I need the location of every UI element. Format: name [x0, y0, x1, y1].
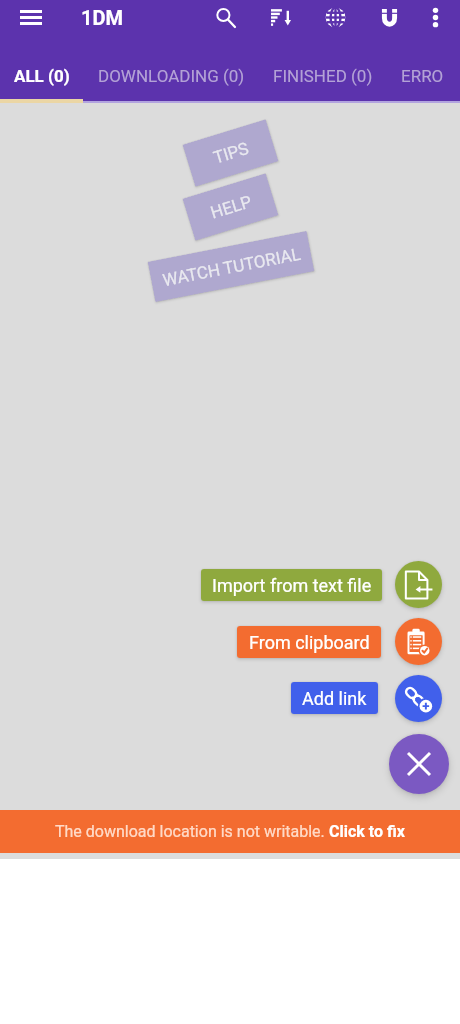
button[interactable]: Search	[204, 0, 246, 38]
button[interactable]: 1DM	[81, 6, 123, 29]
button[interactable]: WATCH TUTORIAL	[148, 231, 314, 302]
staticText: ALL (0)	[14, 66, 70, 86]
button[interactable]: HELP	[182, 173, 279, 241]
button[interactable]: Sort	[260, 0, 302, 38]
staticText: HELP	[208, 191, 254, 223]
button[interactable]: Import from text file	[395, 561, 442, 608]
button[interactable]: Import from text file	[201, 569, 382, 601]
button[interactable]: The download location is not writable.	[0, 810, 460, 853]
staticText: WATCH TUTORIAL	[160, 244, 303, 290]
staticText: 1DM	[81, 6, 123, 29]
button[interactable]: Navigation menu	[9, 0, 53, 35]
button[interactable]: ERROR (0)	[387, 53, 460, 99]
button[interactable]: Close menu	[389, 734, 449, 794]
button[interactable]: Magnet link	[368, 0, 410, 38]
button[interactable]: Browser	[314, 0, 356, 38]
staticText: Click to fix	[329, 822, 405, 841]
staticText: ERROR (0)	[401, 66, 446, 86]
button[interactable]: From clipboard	[395, 618, 442, 665]
button[interactable]: ALL (0)	[0, 53, 84, 99]
button[interactable]: Add link	[395, 675, 442, 722]
staticText: From clipboard	[249, 632, 370, 653]
staticText: Import from text file	[212, 575, 372, 596]
staticText: DOWNLOADING (0)	[98, 66, 245, 86]
staticText: The download location is not writable.	[55, 822, 329, 841]
button[interactable]: TIPS	[182, 119, 279, 187]
button[interactable]: DOWNLOADING (0)	[84, 53, 259, 99]
staticText: Add link	[302, 688, 367, 709]
staticText: FINISHED (0)	[273, 66, 373, 86]
button[interactable]: From clipboard	[237, 626, 381, 658]
button[interactable]: More options	[414, 0, 456, 38]
staticText: TIPS	[211, 138, 251, 168]
button[interactable]: Add link	[291, 682, 378, 714]
button[interactable]: FINISHED (0)	[259, 53, 387, 99]
